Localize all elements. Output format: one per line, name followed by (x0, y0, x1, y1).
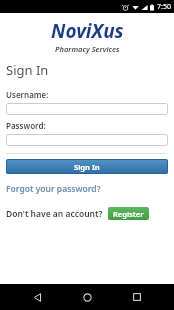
staticText: Forgot your password? (6, 183, 101, 195)
button[interactable]: Forgot your password? (6, 183, 101, 195)
button[interactable]: Recent apps (124, 284, 150, 310)
button[interactable]: Sign In (6, 159, 168, 174)
button[interactable]: Text field (6, 134, 168, 146)
button[interactable]: Back (24, 284, 50, 310)
button[interactable]: Home (74, 284, 100, 310)
staticText: Sign In (74, 162, 100, 172)
button[interactable]: Register (108, 207, 149, 220)
staticText: Register (113, 209, 144, 219)
staticText: 7:50 (157, 2, 171, 12)
staticText: NoviXus (51, 18, 124, 44)
staticText: Password: (6, 120, 46, 131)
button[interactable]: Text field (6, 103, 168, 115)
staticText: Don't have an account? (6, 208, 103, 220)
staticText: Sign In (6, 61, 49, 79)
staticText: Pharmacy Services (55, 44, 120, 54)
staticText: Username: (6, 89, 49, 100)
